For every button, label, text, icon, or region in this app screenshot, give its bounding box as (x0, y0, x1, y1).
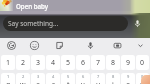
staticText: 1 (6, 58, 11, 68)
staticText: u (96, 80, 101, 84)
button[interactable]: Emoji (27, 38, 42, 52)
button[interactable]: 4 (46, 73, 60, 84)
staticText: 0 (140, 58, 145, 68)
button[interactable]: 2 (16, 55, 30, 70)
staticText: 4 (51, 58, 56, 68)
button[interactable]: 1 (1, 55, 15, 70)
button[interactable]: 9 (121, 73, 135, 84)
staticText: y (81, 80, 85, 84)
button[interactable]: 8 (106, 55, 120, 70)
button[interactable]: 1 (1, 73, 15, 84)
button[interactable]: 3 (31, 55, 45, 70)
staticText: 3 (36, 58, 41, 68)
staticText: e (36, 80, 40, 84)
staticText: r (52, 80, 55, 84)
staticText: 9 (126, 58, 131, 68)
staticText: 8 (112, 74, 115, 79)
button[interactable]: 5 (61, 55, 75, 70)
button[interactable]: Translate (110, 38, 125, 52)
staticText: 1 (7, 74, 10, 79)
staticText: o (126, 80, 131, 84)
button[interactable]: 3 (31, 73, 45, 84)
staticText: 4 (52, 74, 55, 79)
button[interactable]: 6 (76, 55, 90, 70)
button[interactable]: Voice input (83, 38, 98, 52)
staticText: 7 (97, 74, 100, 79)
button[interactable]: Gboard (4, 38, 19, 52)
button[interactable]: 6 (76, 73, 90, 84)
button[interactable]: Stickers (52, 38, 67, 52)
button[interactable]: Hide keyboard (133, 38, 148, 52)
button[interactable]: 4 (46, 55, 60, 70)
button[interactable]: 9 (121, 55, 135, 70)
staticText: 6 (81, 58, 86, 68)
staticText: 3 (37, 74, 40, 79)
button[interactable]: Voice message (131, 17, 144, 30)
staticText: Open baby (16, 2, 49, 10)
button[interactable]: 0 (136, 73, 149, 84)
staticText: 5 (67, 74, 70, 79)
staticText: 6 (82, 74, 85, 79)
button[interactable]: Open baby (0, 0, 131, 11)
button[interactable]: 8 (106, 73, 120, 84)
button[interactable]: 5 (61, 73, 75, 84)
staticText: Say something... (8, 19, 59, 28)
staticText: q (6, 80, 11, 84)
button[interactable]: 0 (136, 55, 149, 70)
button[interactable]: 7 (91, 55, 105, 70)
staticText: p (140, 80, 145, 84)
staticText: 0 (141, 74, 144, 79)
staticText: 8 (111, 58, 116, 68)
staticText: 7 (96, 58, 101, 68)
staticText: 2 (22, 74, 25, 79)
staticText: 9 (127, 74, 130, 79)
staticText: 2 (21, 58, 26, 68)
button[interactable]: 2 (16, 73, 30, 84)
button[interactable]: 7 (91, 73, 105, 84)
staticText: t (67, 80, 70, 84)
staticText: w (20, 80, 26, 84)
staticText: 5 (66, 58, 71, 68)
staticText: i (112, 80, 114, 84)
button[interactable]: Say something... (3, 16, 128, 31)
